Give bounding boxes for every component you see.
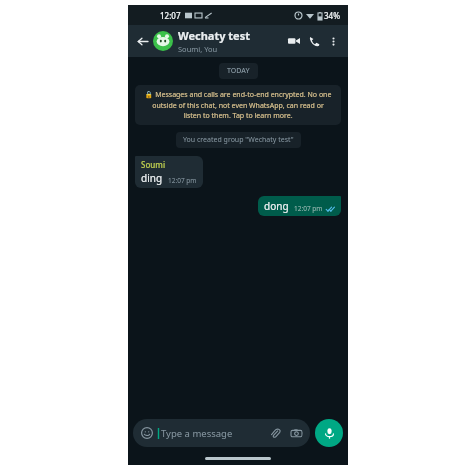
button[interactable]: TODAY xyxy=(219,63,258,79)
staticText: 12:07 pm xyxy=(294,204,323,213)
button[interactable]: Back xyxy=(134,33,150,49)
button[interactable]: Wechaty test xyxy=(178,28,284,54)
staticText: 12:07 pm xyxy=(168,176,197,185)
staticText: TODAY xyxy=(227,66,250,76)
button[interactable]: More options xyxy=(324,32,342,50)
staticText: Wechaty test xyxy=(178,28,250,43)
button[interactable]: Voice call xyxy=(304,31,324,51)
button[interactable]: Camera xyxy=(289,426,303,440)
staticText: 🔒 Messages and calls are end-to-end encr… xyxy=(143,90,333,120)
button[interactable]: Emoji xyxy=(133,419,310,447)
button[interactable]: You created group "Wechaty test" xyxy=(176,132,301,148)
staticText: ding xyxy=(141,171,163,185)
button[interactable]: Soumi xyxy=(135,156,203,188)
staticText: Type a message xyxy=(161,427,268,440)
button[interactable]: dong xyxy=(258,196,341,216)
button[interactable]: Emoji xyxy=(140,426,154,440)
button[interactable] xyxy=(153,31,173,51)
button[interactable]: Attach xyxy=(268,426,282,440)
button[interactable]: 🔒 Messages and calls are end-to-end encr… xyxy=(135,85,341,125)
staticText: 34% xyxy=(324,10,340,21)
staticText: Soumi, You xyxy=(178,44,218,54)
staticText: You created group "Wechaty test" xyxy=(183,135,294,145)
button[interactable]: Video call xyxy=(284,31,304,51)
button[interactable]: Voice message xyxy=(315,419,343,447)
staticText: Soumi xyxy=(141,159,166,170)
staticText: 12:07 xyxy=(160,10,181,21)
staticText: dong xyxy=(264,199,289,213)
